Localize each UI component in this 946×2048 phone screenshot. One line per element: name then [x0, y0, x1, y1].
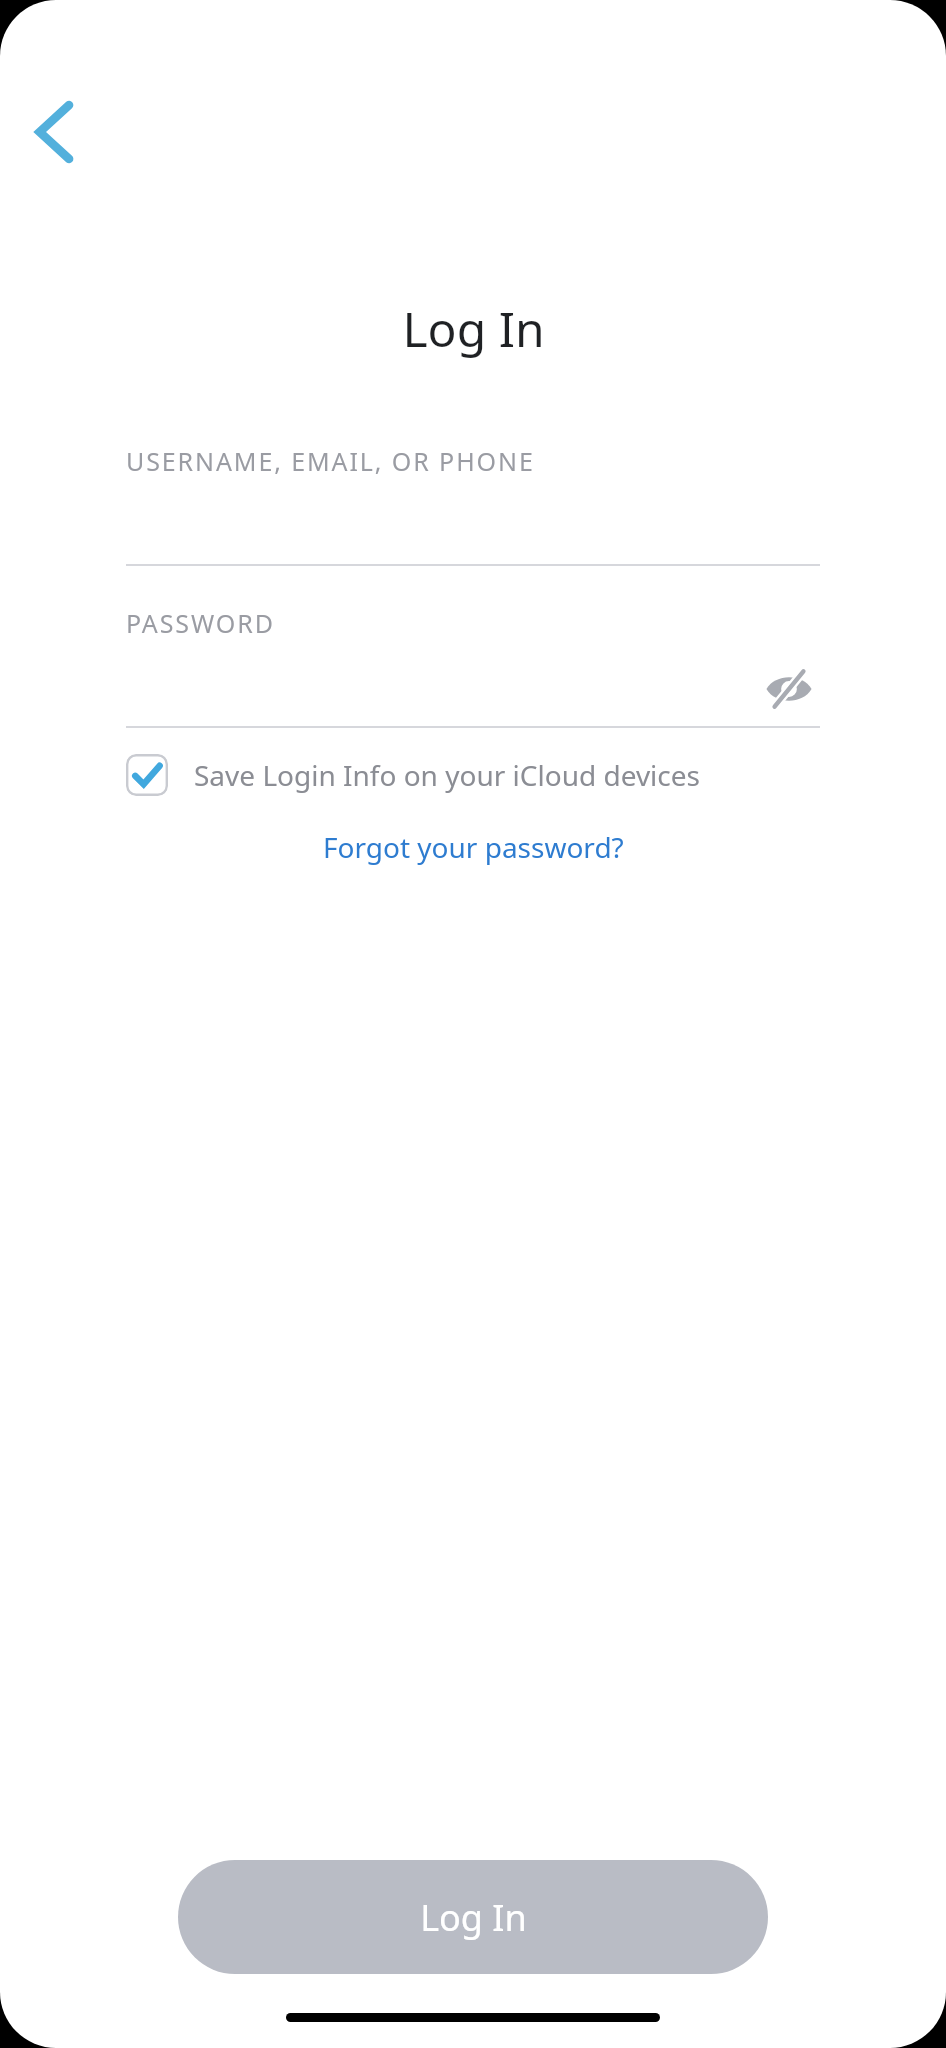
- staticText: USERNAME, EMAIL, OR PHONE: [126, 444, 535, 478]
- button[interactable]: Log In: [178, 1860, 768, 1974]
- button[interactable]: Save Login Info on your iCloud devices: [126, 754, 820, 796]
- button[interactable]: PASSWORD: [126, 606, 820, 728]
- button[interactable]: Forgot your password?: [313, 822, 634, 872]
- button[interactable]: Show password: [758, 658, 820, 720]
- staticText: Log In: [402, 296, 545, 361]
- staticText: PASSWORD: [126, 606, 275, 640]
- button[interactable]: Back: [8, 86, 100, 178]
- button[interactable]: USERNAME, EMAIL, OR PHONE: [126, 444, 820, 566]
- staticText: Forgot your password?: [323, 828, 624, 866]
- staticText: Save Login Info on your iCloud devices: [194, 756, 700, 794]
- staticText: Log In: [420, 1893, 527, 1942]
